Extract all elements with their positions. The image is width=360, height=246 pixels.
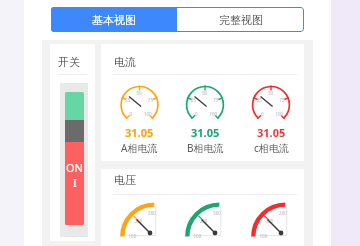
staticText: ON (66, 160, 83, 175)
button[interactable]: 完整视图 (177, 7, 304, 32)
staticText: 电压 (114, 173, 136, 187)
staticText: 开关 (58, 55, 80, 69)
button[interactable]: ON (60, 83, 88, 237)
staticText: I (73, 175, 77, 190)
button[interactable]: 基本视图 (51, 7, 177, 32)
staticText: c相电流 (254, 141, 289, 155)
staticText: A相电流 (121, 141, 158, 155)
staticText: 31.05 (125, 125, 154, 140)
staticText: 电流 (114, 55, 136, 69)
staticText: B相电流 (187, 141, 224, 155)
staticText: 基本视图 (92, 13, 136, 27)
staticText: 完整视图 (219, 13, 263, 27)
staticText: 31.05 (257, 125, 286, 140)
staticText: 31.05 (191, 125, 220, 140)
